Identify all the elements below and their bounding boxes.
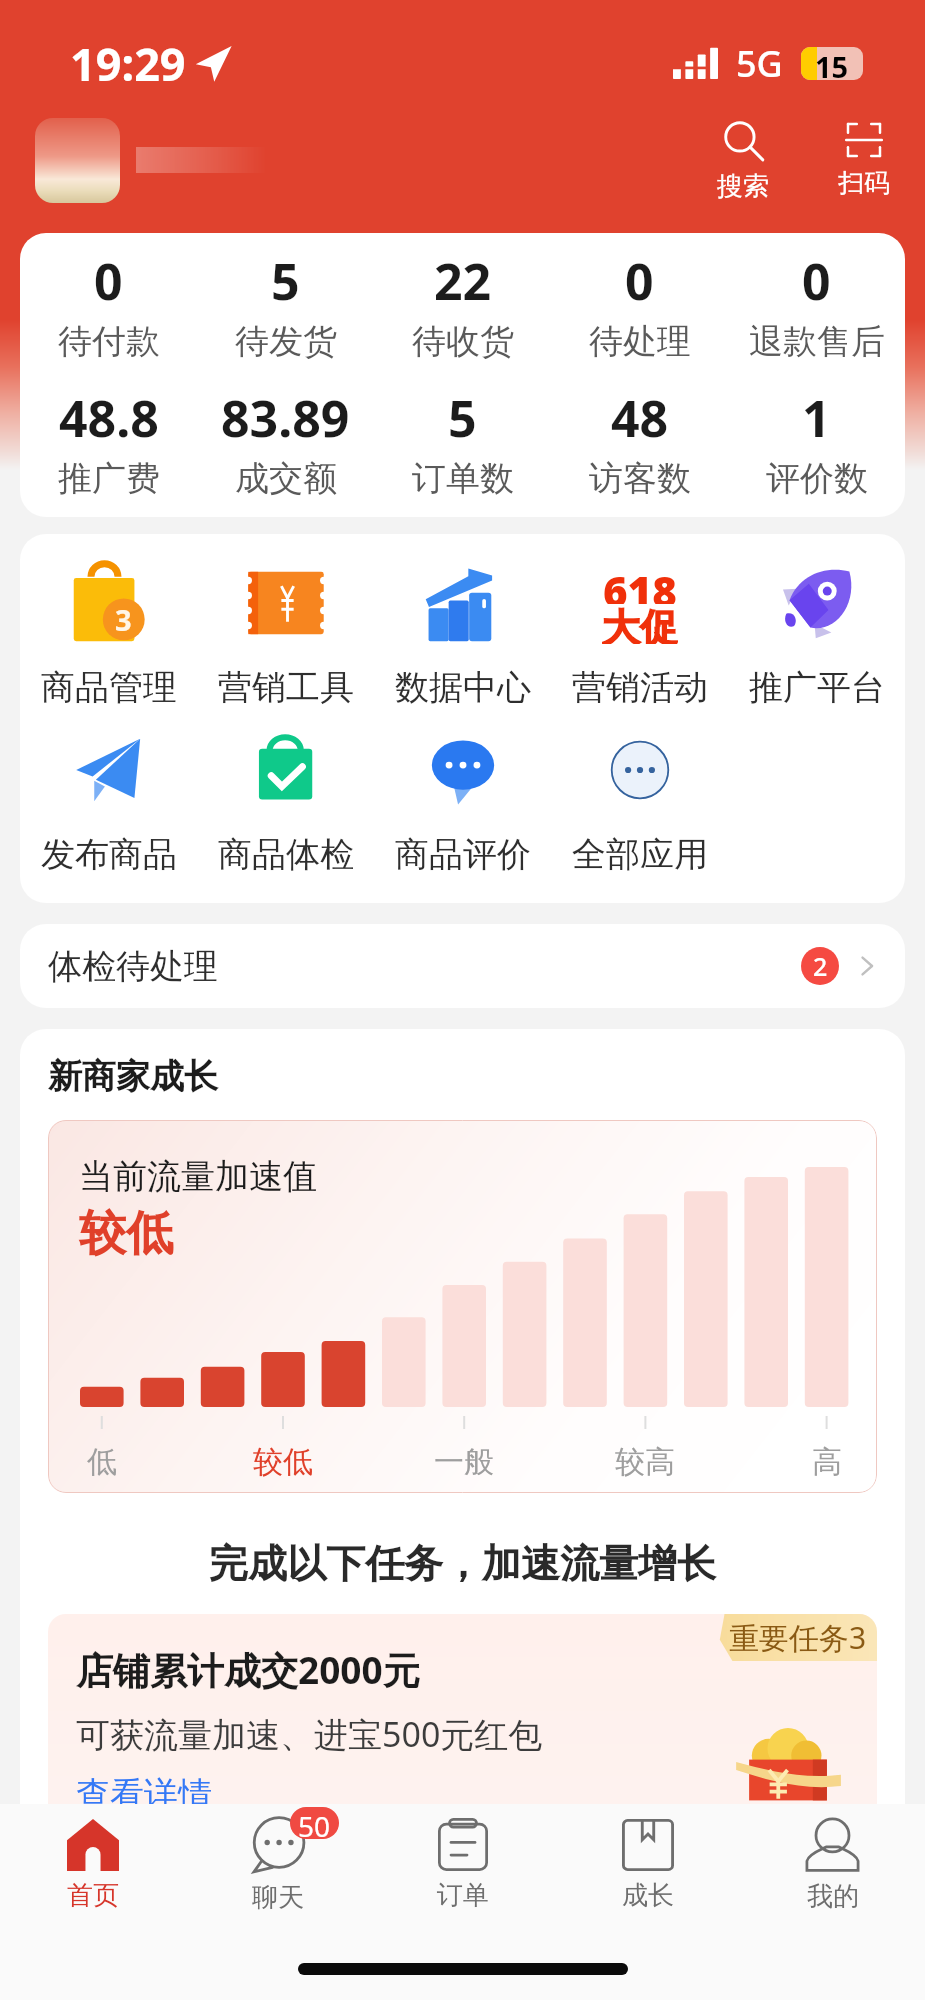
staticText: 营销活动 xyxy=(572,666,708,709)
staticText: 商品体检 xyxy=(218,833,354,876)
staticText: 重要任务3 xyxy=(729,1617,867,1658)
staticText: 待处理 xyxy=(589,320,691,363)
staticText: 待收货 xyxy=(412,320,514,363)
button[interactable]: 发布商品 xyxy=(20,729,197,876)
staticText: 大促 xyxy=(602,604,678,644)
staticText: 评价数 xyxy=(766,457,868,500)
staticText: 当前流量加速值 xyxy=(79,1155,317,1198)
button[interactable]: 83.89 xyxy=(197,384,374,500)
staticText: 首页 xyxy=(67,1879,119,1912)
staticText: 19:29 xyxy=(70,33,186,94)
staticText: 0 xyxy=(94,247,123,315)
staticText: 较高 xyxy=(615,1443,675,1481)
button[interactable]: 5 xyxy=(197,247,374,363)
other: 扫码 xyxy=(844,120,884,160)
staticText: 0 xyxy=(625,247,654,315)
staticText: 15 xyxy=(815,47,849,80)
staticText: 退款售后 xyxy=(749,320,885,363)
staticText: 较低 xyxy=(79,1204,173,1263)
staticText: 营销工具 xyxy=(218,666,354,709)
button[interactable]: 推广平台 xyxy=(728,562,905,709)
button[interactable]: 1 xyxy=(728,384,905,500)
staticText: 50 xyxy=(298,1807,331,1839)
staticText: 数据中心 xyxy=(395,666,531,709)
staticText: 成交额 xyxy=(235,457,337,500)
button[interactable]: 0 xyxy=(551,247,728,363)
button[interactable]: 50 xyxy=(185,1804,370,1938)
staticText: 访客数 xyxy=(589,457,691,500)
button[interactable]: 48 xyxy=(551,384,728,500)
staticText: 83.89 xyxy=(221,384,350,452)
button[interactable]: 商品体检 xyxy=(197,729,374,876)
button[interactable]: 3 xyxy=(20,562,197,709)
staticText: 订单数 xyxy=(412,457,514,500)
staticText: 订单 xyxy=(437,1879,489,1912)
staticText: 待发货 xyxy=(235,320,337,363)
staticText: 商品管理 xyxy=(41,666,177,709)
staticText: 5G xyxy=(736,39,783,88)
staticText: 可获流量加速、进宝500元红包 xyxy=(76,1711,543,1757)
staticText: 成长 xyxy=(622,1879,674,1912)
button[interactable]: 5 xyxy=(374,384,551,500)
staticText: 待付款 xyxy=(58,320,160,363)
button[interactable]: 我的 xyxy=(740,1804,925,1938)
button[interactable]: 首页 xyxy=(0,1804,185,1938)
staticText: 完成以下任务，加速流量增长 xyxy=(209,1539,716,1588)
staticText: 聊天 xyxy=(252,1881,304,1914)
staticText: 新商家成长 xyxy=(48,1055,218,1098)
button[interactable]: 数据中心 xyxy=(374,562,551,709)
staticText: 48.8 xyxy=(59,384,159,452)
staticText: 高 xyxy=(812,1443,842,1481)
staticText: 体检待处理 xyxy=(48,945,218,988)
staticText: 商品评价 xyxy=(395,833,531,876)
staticText: 48 xyxy=(611,384,669,452)
button[interactable]: 0 xyxy=(20,247,197,363)
staticText: 5 xyxy=(271,247,300,315)
staticText: 我的 xyxy=(807,1880,859,1913)
button[interactable]: 营销工具 xyxy=(197,562,374,709)
button[interactable]: 订单 xyxy=(370,1804,555,1938)
staticText: 2 xyxy=(813,949,828,983)
staticText: 全部应用 xyxy=(572,833,708,876)
staticText: 发布商品 xyxy=(41,833,177,876)
other: 搜索 xyxy=(721,118,766,163)
staticText: 0 xyxy=(802,247,831,315)
button[interactable]: 搜索 xyxy=(711,118,775,203)
staticText: 推广费 xyxy=(58,457,160,500)
staticText: 较低 xyxy=(253,1443,313,1481)
staticText: 推广平台 xyxy=(749,666,885,709)
staticText: 查看详情 xyxy=(76,1773,212,1816)
staticText: 5 xyxy=(448,384,477,452)
button[interactable]: 商品评价 xyxy=(374,729,551,876)
button[interactable]: 22 xyxy=(374,247,551,363)
button[interactable]: 0 xyxy=(728,247,905,363)
button[interactable]: 扫码 xyxy=(832,120,896,200)
staticText: 22 xyxy=(434,247,492,315)
staticText: 搜索 xyxy=(717,170,769,203)
button[interactable]: 48.8 xyxy=(20,384,197,500)
button[interactable]: 全部应用 xyxy=(551,729,728,876)
staticText: 1 xyxy=(802,384,831,452)
staticText: 一般 xyxy=(434,1443,494,1481)
staticText: 3 xyxy=(115,600,132,639)
staticText: 低 xyxy=(87,1443,117,1481)
staticText: 扫码 xyxy=(838,167,890,200)
staticText: 618 xyxy=(603,562,677,604)
button[interactable]: 体检待处理 xyxy=(20,924,905,1008)
button[interactable]: 成长 xyxy=(555,1804,740,1938)
staticText: 店铺累计成交2000元 xyxy=(76,1644,420,1695)
button[interactable]: 618 xyxy=(551,562,728,709)
